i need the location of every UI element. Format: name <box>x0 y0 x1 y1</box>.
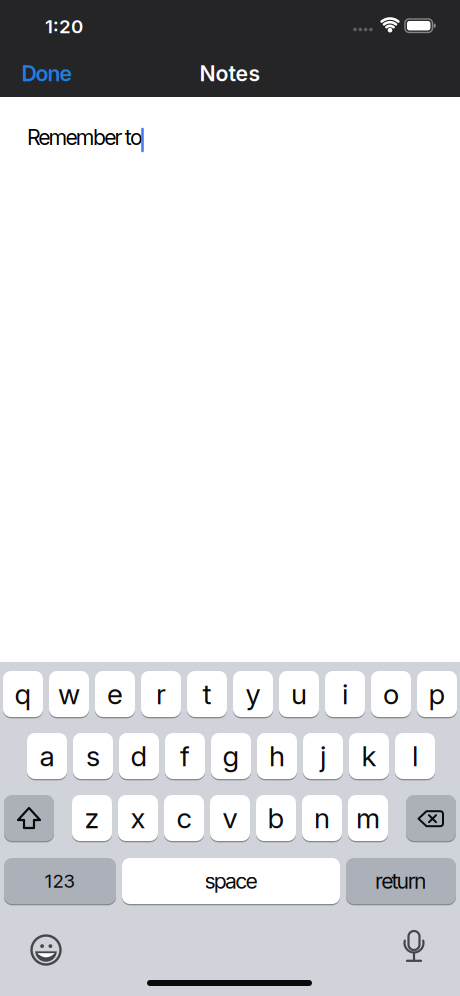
staticText: return <box>375 868 427 894</box>
button[interactable]: z <box>72 795 112 841</box>
staticText: Remember to <box>27 125 143 150</box>
button[interactable]: a <box>27 733 67 779</box>
button[interactable]: Emoji <box>26 930 66 970</box>
button[interactable]: Dictate <box>396 929 432 967</box>
button[interactable]: v <box>210 795 250 841</box>
staticText: u <box>291 677 307 710</box>
staticText: z <box>84 801 99 834</box>
staticText: q <box>14 677 31 710</box>
staticText: x <box>130 801 145 834</box>
button[interactable]: i <box>325 671 365 717</box>
button[interactable]: o <box>371 671 411 717</box>
button[interactable]: p <box>417 671 457 717</box>
staticText: f <box>180 739 190 772</box>
staticText: d <box>130 739 147 772</box>
button[interactable]: d <box>119 733 159 779</box>
staticText: h <box>269 739 285 772</box>
button[interactable]: t <box>187 671 227 717</box>
button[interactable]: m <box>348 795 388 841</box>
button[interactable]: Done <box>12 53 82 93</box>
staticText: b <box>267 801 284 834</box>
staticText: s <box>86 739 100 772</box>
staticText: Notes <box>199 61 260 86</box>
button[interactable]: y <box>233 671 273 717</box>
staticText: l <box>412 739 418 772</box>
staticText: space <box>205 868 257 894</box>
button[interactable]: Delete <box>406 795 456 841</box>
button[interactable]: w <box>49 671 89 717</box>
button[interactable]: g <box>211 733 251 779</box>
button[interactable]: s <box>73 733 113 779</box>
button[interactable]: c <box>164 795 204 841</box>
staticText: g <box>222 739 239 772</box>
staticText: t <box>202 677 211 710</box>
button[interactable]: h <box>257 733 297 779</box>
staticText: v <box>222 801 237 834</box>
button[interactable]: r <box>141 671 181 717</box>
staticText: j <box>320 739 326 772</box>
button[interactable]: n <box>302 795 342 841</box>
button[interactable]: b <box>256 795 296 841</box>
button[interactable]: k <box>349 733 389 779</box>
button[interactable]: return <box>346 858 456 904</box>
button[interactable]: space <box>122 858 340 904</box>
button[interactable]: j <box>303 733 343 779</box>
button[interactable]: u <box>279 671 319 717</box>
staticText: e <box>107 677 123 710</box>
staticText: 1:20 <box>45 15 83 37</box>
staticText: r <box>156 677 166 710</box>
staticText: n <box>314 801 330 834</box>
button[interactable]: l <box>395 733 435 779</box>
button[interactable]: Shift <box>4 795 54 841</box>
staticText: y <box>245 677 260 710</box>
staticText: 123 <box>44 870 75 892</box>
staticText: a <box>39 739 54 772</box>
staticText: w <box>58 677 80 710</box>
button[interactable]: e <box>95 671 135 717</box>
button[interactable]: x <box>118 795 158 841</box>
staticText: c <box>176 801 191 834</box>
staticText: k <box>361 739 376 772</box>
staticText: Done <box>21 61 72 86</box>
staticText: p <box>428 677 445 710</box>
staticText: m <box>356 801 380 834</box>
button[interactable]: f <box>165 733 205 779</box>
staticText: o <box>383 677 399 710</box>
button[interactable]: 123 <box>4 858 116 904</box>
staticText: i <box>342 677 348 710</box>
button[interactable]: q <box>3 671 43 717</box>
